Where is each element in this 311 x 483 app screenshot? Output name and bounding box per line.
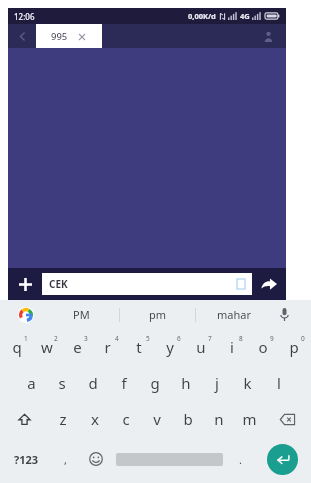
- staticText: i: [230, 337, 234, 357]
- button[interactable]: s: [46, 365, 77, 401]
- button[interactable]: q: [2, 329, 32, 365]
- staticText: 2: [54, 334, 58, 343]
- staticText: 8: [239, 334, 243, 343]
- staticText: k: [243, 373, 252, 393]
- staticText: 9: [270, 334, 274, 343]
- staticText: b: [183, 409, 193, 429]
- staticText: p: [289, 337, 299, 357]
- staticText: mahar: [217, 307, 251, 322]
- staticText: e: [73, 337, 82, 357]
- staticText: g: [150, 373, 160, 393]
- button[interactable]: z: [47, 401, 79, 437]
- button[interactable]: g: [139, 365, 170, 401]
- button[interactable]: mahar: [196, 300, 271, 329]
- button[interactable]: Emoji: [80, 437, 112, 481]
- staticText: a: [27, 373, 36, 393]
- staticText: 5: [146, 334, 150, 343]
- button[interactable]: t: [123, 329, 154, 365]
- button[interactable]: CEK: [42, 273, 252, 295]
- staticText: 4: [115, 334, 119, 343]
- staticText: c: [122, 409, 130, 429]
- staticText: z: [59, 409, 67, 429]
- button[interactable]: Enter: [255, 437, 309, 481]
- button[interactable]: pm: [120, 300, 195, 329]
- button[interactable]: u: [185, 329, 216, 365]
- staticText: CEK: [49, 277, 68, 291]
- staticText: 6: [177, 334, 181, 343]
- button[interactable]: ?123: [2, 437, 51, 481]
- button[interactable]: h: [170, 365, 201, 401]
- button[interactable]: Account: [250, 24, 286, 48]
- button[interactable]: Add: [8, 268, 42, 300]
- staticText: m: [242, 409, 257, 429]
- button[interactable]: PM: [44, 300, 119, 329]
- button[interactable]: a: [16, 365, 46, 401]
- staticText: y: [166, 337, 174, 357]
- staticText: d: [88, 373, 98, 393]
- staticText: r: [104, 337, 111, 357]
- button[interactable]: Voice input: [271, 300, 297, 329]
- button[interactable]: 995: [36, 24, 102, 48]
- button[interactable]: ,: [51, 437, 80, 481]
- button[interactable]: o: [247, 329, 278, 365]
- button[interactable]: w: [32, 329, 62, 365]
- button[interactable]: l: [263, 365, 294, 401]
- button[interactable]: j: [201, 365, 232, 401]
- button[interactable]: Send: [252, 268, 286, 300]
- staticText: x: [91, 409, 99, 429]
- button[interactable]: p: [278, 329, 309, 365]
- staticText: w: [41, 337, 53, 357]
- staticText: o: [258, 337, 268, 357]
- staticText: 1: [24, 334, 28, 343]
- button[interactable]: f: [108, 365, 139, 401]
- button[interactable]: Google: [8, 300, 44, 329]
- staticText: l: [277, 373, 281, 393]
- staticText: 7: [208, 334, 212, 343]
- button[interactable]: m: [234, 401, 265, 437]
- staticText: 0: [301, 334, 305, 343]
- staticText: t: [136, 337, 142, 357]
- staticText: v: [153, 409, 161, 429]
- staticText: 4G: [240, 11, 250, 21]
- staticText: n: [214, 409, 224, 429]
- staticText: s: [58, 373, 66, 393]
- button[interactable]: x: [79, 401, 110, 437]
- button[interactable]: n: [203, 401, 234, 437]
- staticText: 3: [84, 334, 88, 343]
- button[interactable]: Backspace: [265, 401, 309, 437]
- button[interactable]: Shift: [2, 401, 47, 437]
- staticText: j: [215, 373, 219, 393]
- staticText: 0,00K/d: [188, 11, 216, 21]
- staticText: ,: [64, 452, 67, 467]
- button[interactable]: c: [110, 401, 141, 437]
- staticText: ?123: [14, 452, 39, 467]
- button[interactable]: r: [92, 329, 123, 365]
- button[interactable]: e: [62, 329, 92, 365]
- staticText: h: [181, 373, 191, 393]
- button[interactable]: .: [226, 437, 255, 481]
- staticText: pm: [149, 307, 167, 322]
- staticText: f: [121, 373, 127, 393]
- staticText: PM: [73, 307, 90, 322]
- staticText: .: [239, 452, 242, 467]
- staticText: q: [12, 337, 22, 357]
- staticText: u: [196, 337, 206, 357]
- button[interactable]: k: [232, 365, 263, 401]
- button[interactable]: d: [77, 365, 108, 401]
- button[interactable]: Space: [112, 437, 226, 481]
- staticText: 995: [51, 30, 68, 43]
- staticText: 12:06: [14, 11, 35, 22]
- button[interactable]: b: [172, 401, 203, 437]
- button[interactable]: i: [216, 329, 247, 365]
- button[interactable]: Close tab: [76, 31, 87, 42]
- button[interactable]: y: [154, 329, 185, 365]
- button[interactable]: Back: [8, 24, 36, 48]
- button[interactable]: v: [141, 401, 172, 437]
